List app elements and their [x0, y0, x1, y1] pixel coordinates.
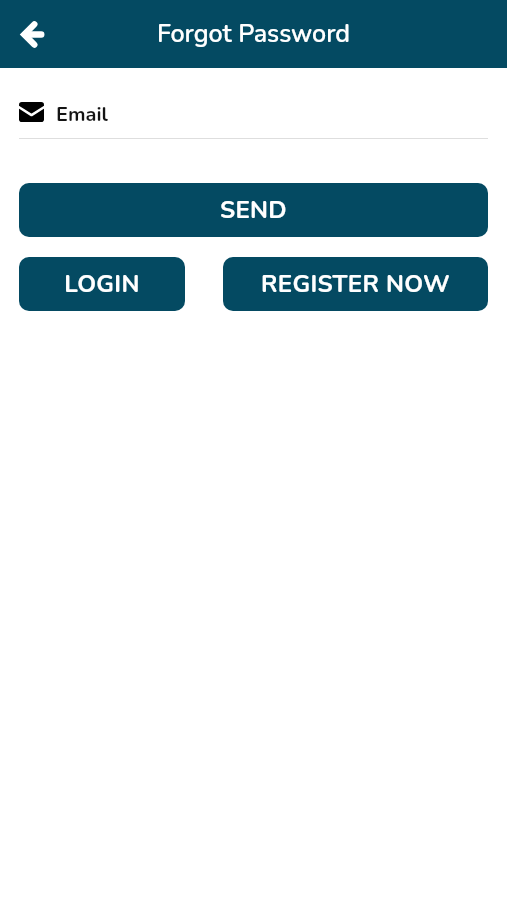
button[interactable]: REGISTER NOW	[223, 257, 488, 311]
staticText: Forgot Password	[157, 17, 351, 51]
staticText: REGISTER NOW	[261, 268, 450, 301]
staticText: Email	[56, 101, 108, 128]
staticText: LOGIN	[64, 268, 140, 301]
button[interactable]: LOGIN	[19, 257, 185, 311]
button[interactable]: Back	[9, 11, 55, 57]
button[interactable]: SEND	[19, 183, 488, 237]
staticText: SEND	[220, 194, 287, 227]
